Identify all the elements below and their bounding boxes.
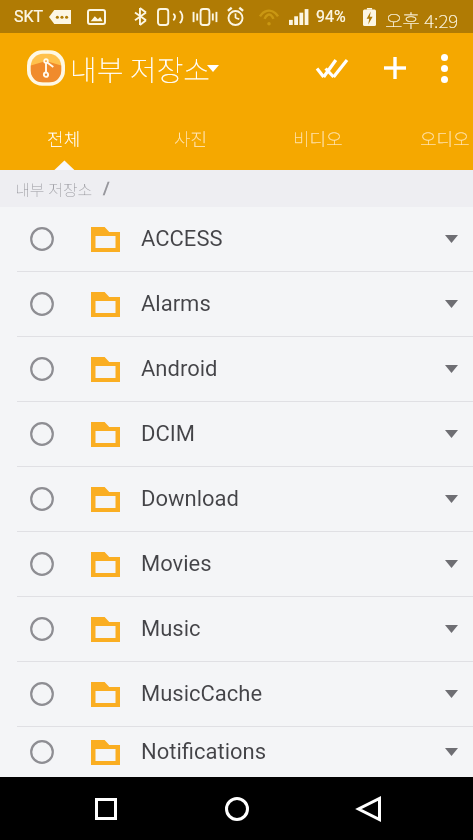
- button[interactable]: More actions: [429, 477, 473, 521]
- button[interactable]: Select Notifications: [0, 727, 473, 777]
- button[interactable]: 사진: [127, 103, 254, 170]
- staticText: 오디오: [420, 125, 470, 151]
- button[interactable]: More actions: [429, 217, 473, 261]
- button[interactable]: Select ACCESS: [30, 227, 54, 251]
- button[interactable]: Select all: [308, 44, 356, 92]
- staticText: Download: [141, 486, 239, 512]
- staticText: 전체: [47, 125, 81, 151]
- staticText: Alarms: [141, 291, 211, 317]
- staticText: 94%: [316, 7, 346, 26]
- button[interactable]: Select Movies: [30, 552, 54, 576]
- button[interactable]: Select DCIM: [0, 402, 473, 466]
- staticText: /: [103, 179, 110, 198]
- button[interactable]: 전체: [0, 103, 127, 170]
- staticText: Android: [141, 356, 218, 382]
- button[interactable]: Select DCIM: [30, 422, 54, 446]
- button[interactable]: Add: [371, 44, 419, 92]
- button[interactable]: Select Alarms: [0, 272, 473, 336]
- button[interactable]: Select ACCESS: [0, 207, 473, 271]
- staticText: 사진: [174, 125, 208, 151]
- staticText: 비디오: [293, 125, 343, 151]
- button[interactable]: 내부 저장소: [27, 33, 222, 103]
- button[interactable]: Select Notifications: [30, 740, 54, 764]
- button[interactable]: Select Download: [30, 487, 54, 511]
- button[interactable]: More actions: [429, 672, 473, 716]
- button[interactable]: Select Android: [30, 357, 54, 381]
- staticText: SKT: [14, 7, 44, 26]
- button[interactable]: 비디오: [254, 103, 381, 170]
- staticText: Music: [141, 616, 201, 642]
- staticText: 오후 4:29: [385, 6, 459, 34]
- button[interactable]: More actions: [429, 282, 473, 326]
- button[interactable]: More actions: [429, 347, 473, 391]
- button[interactable]: Recent apps: [74, 777, 137, 840]
- button[interactable]: Select Download: [0, 467, 473, 531]
- button[interactable]: Select Alarms: [30, 292, 54, 316]
- button[interactable]: More actions: [429, 542, 473, 586]
- button[interactable]: Back: [337, 777, 400, 840]
- button[interactable]: 오디오: [381, 103, 473, 170]
- button[interactable]: Select MusicCache: [30, 682, 54, 706]
- staticText: Movies: [141, 551, 212, 577]
- button[interactable]: Select Music: [30, 617, 54, 641]
- button[interactable]: More options: [420, 44, 468, 92]
- staticText: Notifications: [141, 739, 267, 765]
- staticText: ACCESS: [141, 226, 223, 252]
- button[interactable]: More actions: [429, 607, 473, 651]
- button[interactable]: Select MusicCache: [0, 662, 473, 726]
- button[interactable]: 내부 저장소: [15, 177, 93, 200]
- button[interactable]: More actions: [429, 730, 473, 774]
- button[interactable]: Home: [205, 777, 268, 840]
- button[interactable]: Select Movies: [0, 532, 473, 596]
- staticText: MusicCache: [141, 681, 263, 707]
- button[interactable]: Select Music: [0, 597, 473, 661]
- button[interactable]: More actions: [429, 412, 473, 456]
- button[interactable]: Select Android: [0, 337, 473, 401]
- staticText: DCIM: [141, 421, 195, 447]
- staticText: 내부 저장소: [70, 47, 210, 89]
